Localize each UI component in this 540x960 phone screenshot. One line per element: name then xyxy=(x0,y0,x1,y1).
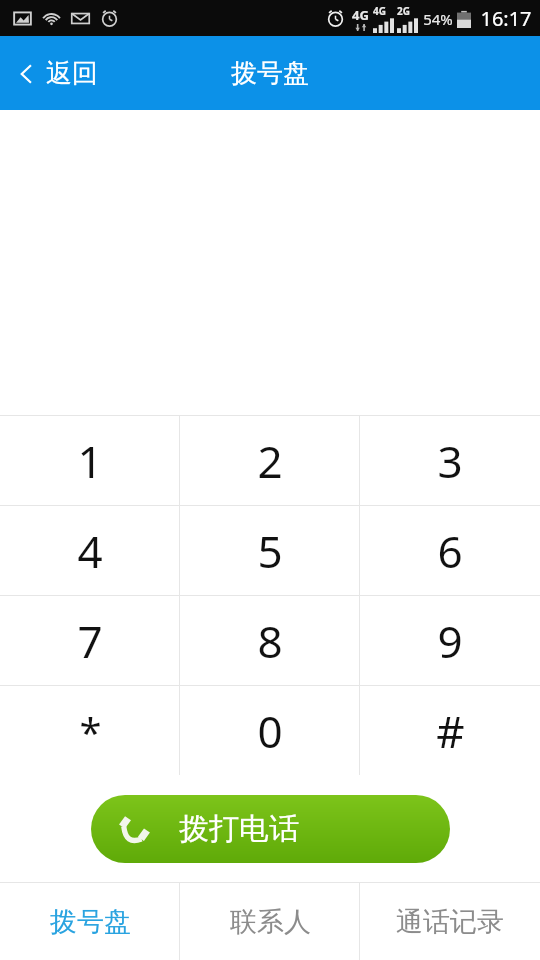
staticText: 2 xyxy=(257,431,283,491)
button[interactable]: 7 xyxy=(0,596,180,685)
button[interactable]: 拨打电话 xyxy=(91,795,450,863)
staticText: 3 xyxy=(437,431,463,491)
staticText: 通话记录 xyxy=(396,905,504,939)
button[interactable]: 2 xyxy=(180,416,360,505)
button[interactable]: 0 xyxy=(180,686,360,775)
button[interactable]: 8 xyxy=(180,596,360,685)
staticText: 联系人 xyxy=(230,905,311,939)
button[interactable]: 3 xyxy=(360,416,540,505)
staticText: 4G xyxy=(352,6,369,24)
button[interactable]: 返回 xyxy=(0,49,114,98)
staticText: 返回 xyxy=(46,57,98,90)
staticText: 6 xyxy=(437,521,463,581)
button[interactable]: 4 xyxy=(0,506,180,595)
staticText: 54% xyxy=(423,9,453,29)
staticText: * xyxy=(79,704,102,758)
staticText: 7 xyxy=(77,611,103,671)
staticText: 拨打电话 xyxy=(179,810,299,848)
button[interactable]: 联系人 xyxy=(180,883,360,960)
button[interactable]: 9 xyxy=(360,596,540,685)
staticText: 2G xyxy=(397,4,410,18)
staticText: 4G xyxy=(373,4,386,18)
button[interactable]: 5 xyxy=(180,506,360,595)
staticText: # xyxy=(436,701,465,761)
staticText: 5 xyxy=(257,521,283,581)
staticText: 拨号盘 xyxy=(50,905,131,939)
button[interactable]: 通话记录 xyxy=(360,883,540,960)
staticText: 4 xyxy=(77,521,103,581)
button[interactable]: # xyxy=(360,686,540,775)
staticText: 0 xyxy=(257,701,283,761)
button[interactable]: * xyxy=(0,686,180,775)
staticText: 拨号盘 xyxy=(231,57,309,90)
button[interactable]: 1 xyxy=(0,416,180,505)
staticText: 16:17 xyxy=(480,5,532,32)
staticText: 8 xyxy=(257,611,283,671)
staticText: 9 xyxy=(437,611,463,671)
button[interactable]: 拨号盘 xyxy=(0,883,180,960)
button[interactable]: 6 xyxy=(360,506,540,595)
staticText: 1 xyxy=(77,431,103,491)
